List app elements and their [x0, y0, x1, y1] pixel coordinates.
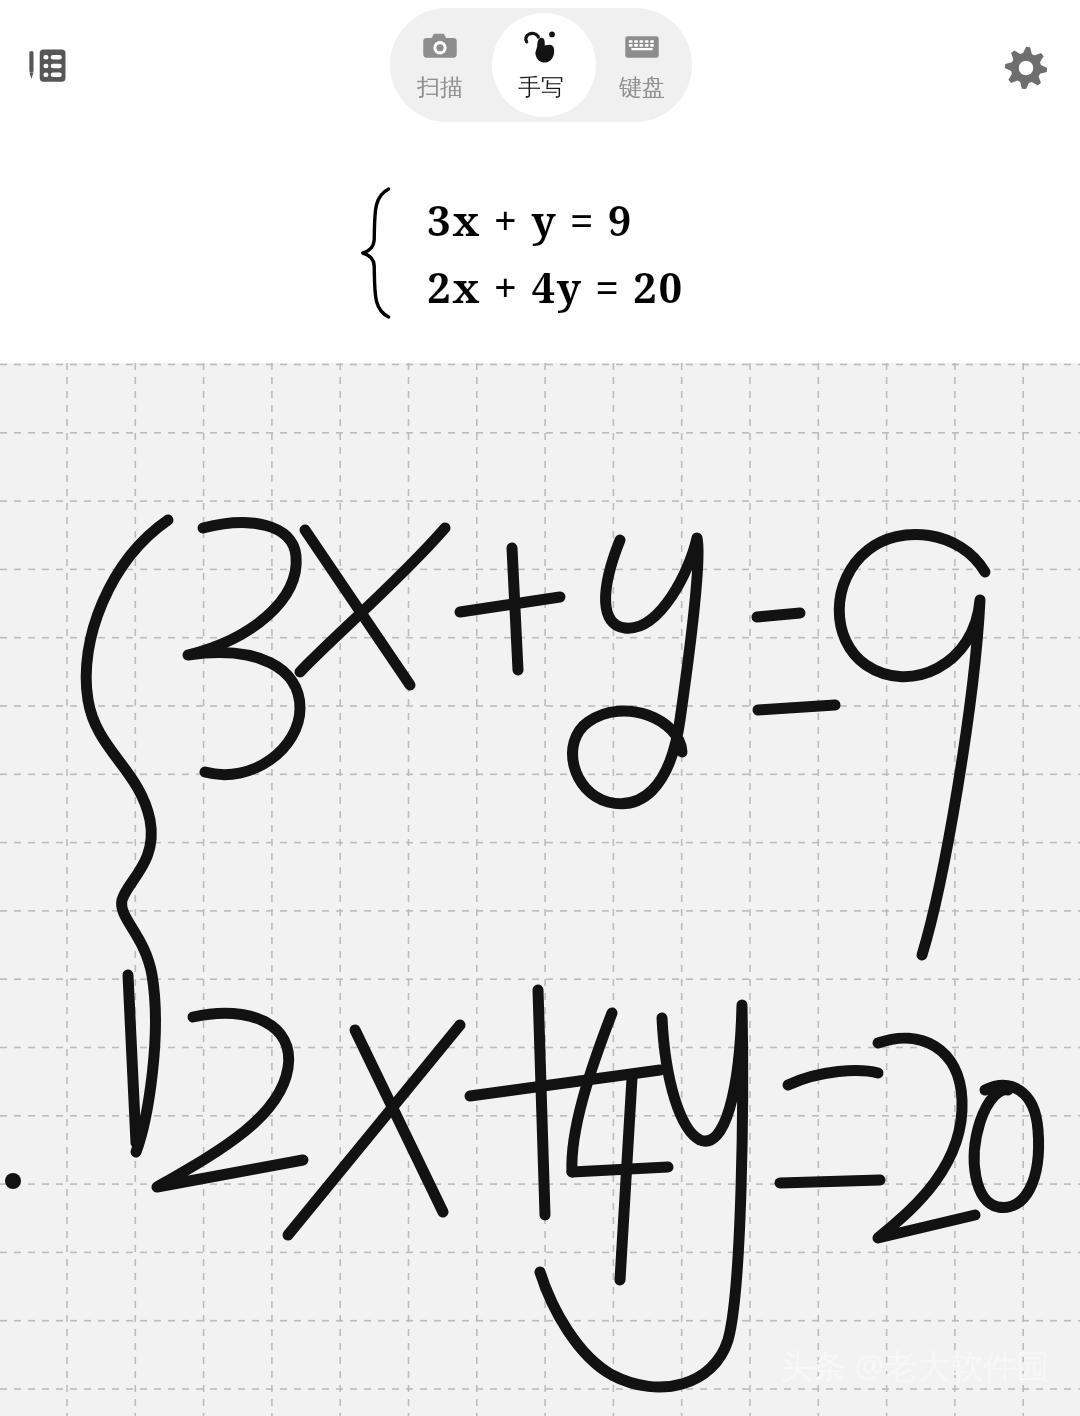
staticText: 头条 @老大软件园	[780, 1343, 1050, 1388]
button[interactable]: Settings	[986, 28, 1066, 108]
staticText: 手写	[518, 73, 564, 102]
button[interactable]: 键盘	[591, 8, 692, 122]
staticText: 2x + 4y = 20	[427, 258, 684, 315]
button[interactable]: 扫描	[390, 8, 490, 122]
button[interactable]: Notes	[8, 26, 88, 106]
staticText: 键盘	[619, 73, 665, 102]
staticText: 3x + y = 9	[427, 191, 634, 248]
staticText: 扫描	[417, 73, 463, 102]
button[interactable]: 手写	[490, 8, 591, 122]
